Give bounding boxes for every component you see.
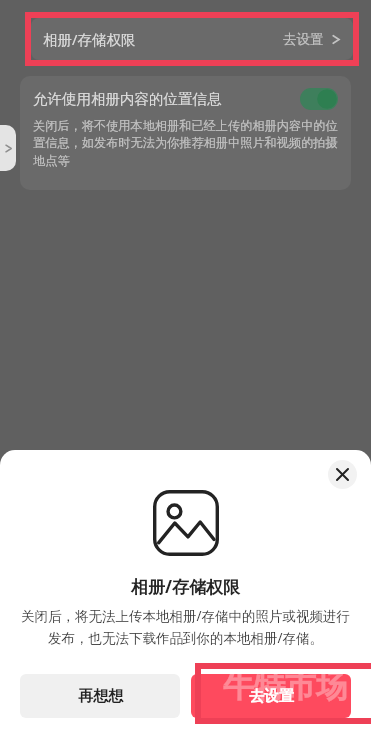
staticText: 相册/存储权限 [43, 29, 136, 49]
staticText: 去设置 [249, 687, 294, 706]
staticText: 再想想 [78, 687, 123, 706]
staticText: 关闭后，将不使用本地相册和已经上传的相册内容中的位置信息，如发布时无法为你推荐相… [33, 118, 338, 169]
button[interactable]: Expand panel [0, 125, 16, 171]
staticText: 牛特市场 [223, 667, 347, 706]
staticText: 关闭后，将无法上传本地相册/存储中的照片或视频进行发布，也无法下载作品到你的本地… [15, 607, 356, 647]
staticText: 允许使用相册内容的位置信息 [33, 90, 222, 108]
button[interactable]: 再想想 [20, 674, 180, 718]
staticText: 相册/存储权限 [131, 575, 241, 598]
button[interactable]: 相册/存储权限 [31, 18, 353, 60]
button[interactable]: 去设置 [191, 674, 351, 718]
button[interactable]: Close [328, 460, 357, 489]
staticText: 去设置 [283, 31, 324, 48]
